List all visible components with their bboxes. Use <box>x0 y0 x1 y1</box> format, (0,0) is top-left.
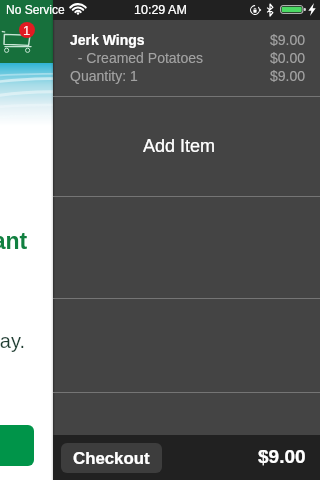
staticText: 1 <box>23 23 31 38</box>
other: Rotation lock <box>250 5 260 15</box>
staticText: Restaurant <box>0 228 28 254</box>
staticText: No Service <box>6 3 65 16</box>
staticText: Jerk Wings <box>70 32 145 48</box>
button[interactable]: Jerk Wings <box>53 20 320 96</box>
button[interactable]: Cart <box>0 28 34 54</box>
staticText: Add Item <box>143 136 216 156</box>
staticText: Quantity: 1 <box>70 68 138 84</box>
staticText: $9.00 <box>258 446 306 467</box>
other: Bluetooth <box>267 4 273 16</box>
staticText: Checkout <box>73 449 150 468</box>
staticText: $9.00 <box>270 68 306 84</box>
button[interactable]: Checkout <box>61 443 162 473</box>
button[interactable]: Order now <box>0 425 34 466</box>
staticText: today. <box>0 330 25 352</box>
button[interactable]: Add Item <box>53 97 320 196</box>
other: Charging <box>308 3 316 16</box>
other: Battery <box>280 5 307 14</box>
staticText: - Creamed Potatoes <box>70 50 204 66</box>
staticText: $0.00 <box>270 50 306 66</box>
staticText: 10:29 AM <box>134 3 187 17</box>
staticText: $9.00 <box>270 32 306 48</box>
